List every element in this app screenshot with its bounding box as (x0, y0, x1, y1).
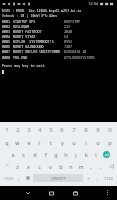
button[interactable]: z (12, 160, 23, 172)
button[interactable]: , (86, 160, 96, 172)
staticText: 3 (27, 126, 31, 134)
staticText: 0007 (2, 49, 11, 54)
staticText: l (95, 151, 97, 158)
staticText: o (96, 139, 100, 146)
staticText: PRG.END (13, 55, 28, 60)
staticText: BIOSDATA 10 (64, 49, 87, 54)
staticText: r (38, 139, 41, 146)
button[interactable]: . (96, 160, 106, 172)
staticText: 5 (49, 126, 53, 134)
staticText: s (22, 151, 25, 158)
button[interactable]: ?123 (1, 172, 15, 184)
staticText: Press any key to exit (2, 63, 45, 68)
button[interactable]: j (71, 148, 81, 160)
button[interactable]: s (18, 148, 29, 160)
button[interactable]: q (1, 136, 12, 148)
staticText: 2 (16, 126, 20, 134)
button[interactable]: 6 (56, 124, 68, 136)
staticText: 9 (96, 126, 100, 134)
button[interactable]: More options (101, 186, 113, 200)
button[interactable]: l (91, 148, 101, 160)
button[interactable]: e (23, 136, 34, 148)
staticText: p (108, 139, 112, 146)
button[interactable]: i (80, 136, 92, 148)
staticText: , (18, 175, 20, 182)
staticText: d (33, 151, 37, 158)
button[interactable]: BIOS : MSDK lkz.1204G.bsp41.m257.bi.ix (0, 7, 117, 122)
button[interactable]: g (51, 148, 61, 160)
button[interactable]: QWERTY (33, 174, 83, 182)
staticText: ⌁ (87, 176, 90, 181)
button[interactable]: Delete (106, 160, 116, 172)
staticText: 0 (108, 126, 112, 134)
button[interactable]: o (92, 136, 104, 148)
button[interactable]: . (93, 172, 101, 184)
staticText: 7207 (64, 44, 73, 49)
staticText: w (15, 139, 20, 146)
button[interactable]: , (15, 172, 23, 184)
staticText: ?123 (104, 176, 113, 181)
staticText: Vcheck : 18 | 10mV/3*5:42ms (2, 13, 57, 18)
button[interactable]: a (7, 148, 18, 160)
staticText: . (96, 175, 98, 182)
button[interactable]: b (56, 160, 66, 172)
staticText: 7 (72, 126, 76, 134)
staticText: 8 (84, 126, 88, 134)
button[interactable]: n (66, 160, 76, 172)
button[interactable]: Settings (83, 172, 93, 184)
button[interactable]: w (12, 136, 23, 148)
staticText: x (27, 163, 30, 170)
button[interactable]: 1 (1, 124, 12, 136)
button[interactable]: y (56, 136, 68, 148)
button[interactable]: 2 (12, 124, 23, 136)
button[interactable]: 9 (92, 124, 104, 136)
staticText: e (27, 139, 31, 146)
button[interactable]: Enter (101, 148, 111, 160)
staticText: b (59, 163, 63, 170)
button[interactable]: x (23, 160, 34, 172)
button[interactable]: r (34, 136, 45, 148)
staticText: NORDT KAJNBOUND (13, 44, 44, 49)
staticText: NORDT VITAX (13, 34, 36, 39)
staticText: t (50, 139, 52, 146)
button[interactable]: 4 (34, 124, 45, 136)
staticText: u (72, 139, 76, 146)
button[interactable]: 0 (104, 124, 116, 136)
button[interactable]: v (45, 160, 56, 172)
button[interactable]: 8 (80, 124, 92, 136)
button[interactable]: 7 (68, 124, 80, 136)
staticText: n (69, 163, 73, 170)
button[interactable]: Shift (1, 160, 12, 172)
button[interactable]: t (45, 136, 56, 148)
staticText: y (61, 139, 64, 146)
staticText: k (85, 151, 88, 158)
staticText: NORDT FASTBOOT (13, 29, 42, 34)
staticText: 0006 (2, 44, 11, 49)
staticText: 1 (5, 126, 9, 134)
staticText: v (49, 163, 52, 170)
button[interactable]: u (68, 136, 80, 148)
button[interactable]: Home (44, 186, 59, 200)
staticText: a (11, 151, 15, 158)
button[interactable]: p (104, 136, 116, 148)
staticText: j (75, 151, 77, 158)
staticText: 2048 (64, 29, 73, 34)
button[interactable]: Recent apps (68, 186, 83, 200)
button[interactable]: k (81, 148, 91, 160)
button[interactable]: ?123 (101, 172, 116, 184)
button[interactable]: m (76, 160, 86, 172)
button[interactable]: Back (20, 186, 35, 200)
button[interactable]: d (29, 148, 40, 160)
staticText: 0005 (2, 39, 11, 44)
button[interactable]: h (61, 148, 71, 160)
button[interactable]: 3 (23, 124, 34, 136)
staticText: 0002 (2, 24, 11, 29)
button[interactable]: Emoji (23, 172, 33, 184)
staticText: 12:04 (88, 1, 99, 6)
button[interactable]: c (34, 160, 45, 172)
button[interactable]: f (40, 148, 51, 160)
button[interactable]: 5 (45, 124, 56, 136)
staticText: , (90, 163, 92, 170)
staticText: 8992 (64, 39, 73, 44)
staticText: ?123 (4, 176, 13, 181)
